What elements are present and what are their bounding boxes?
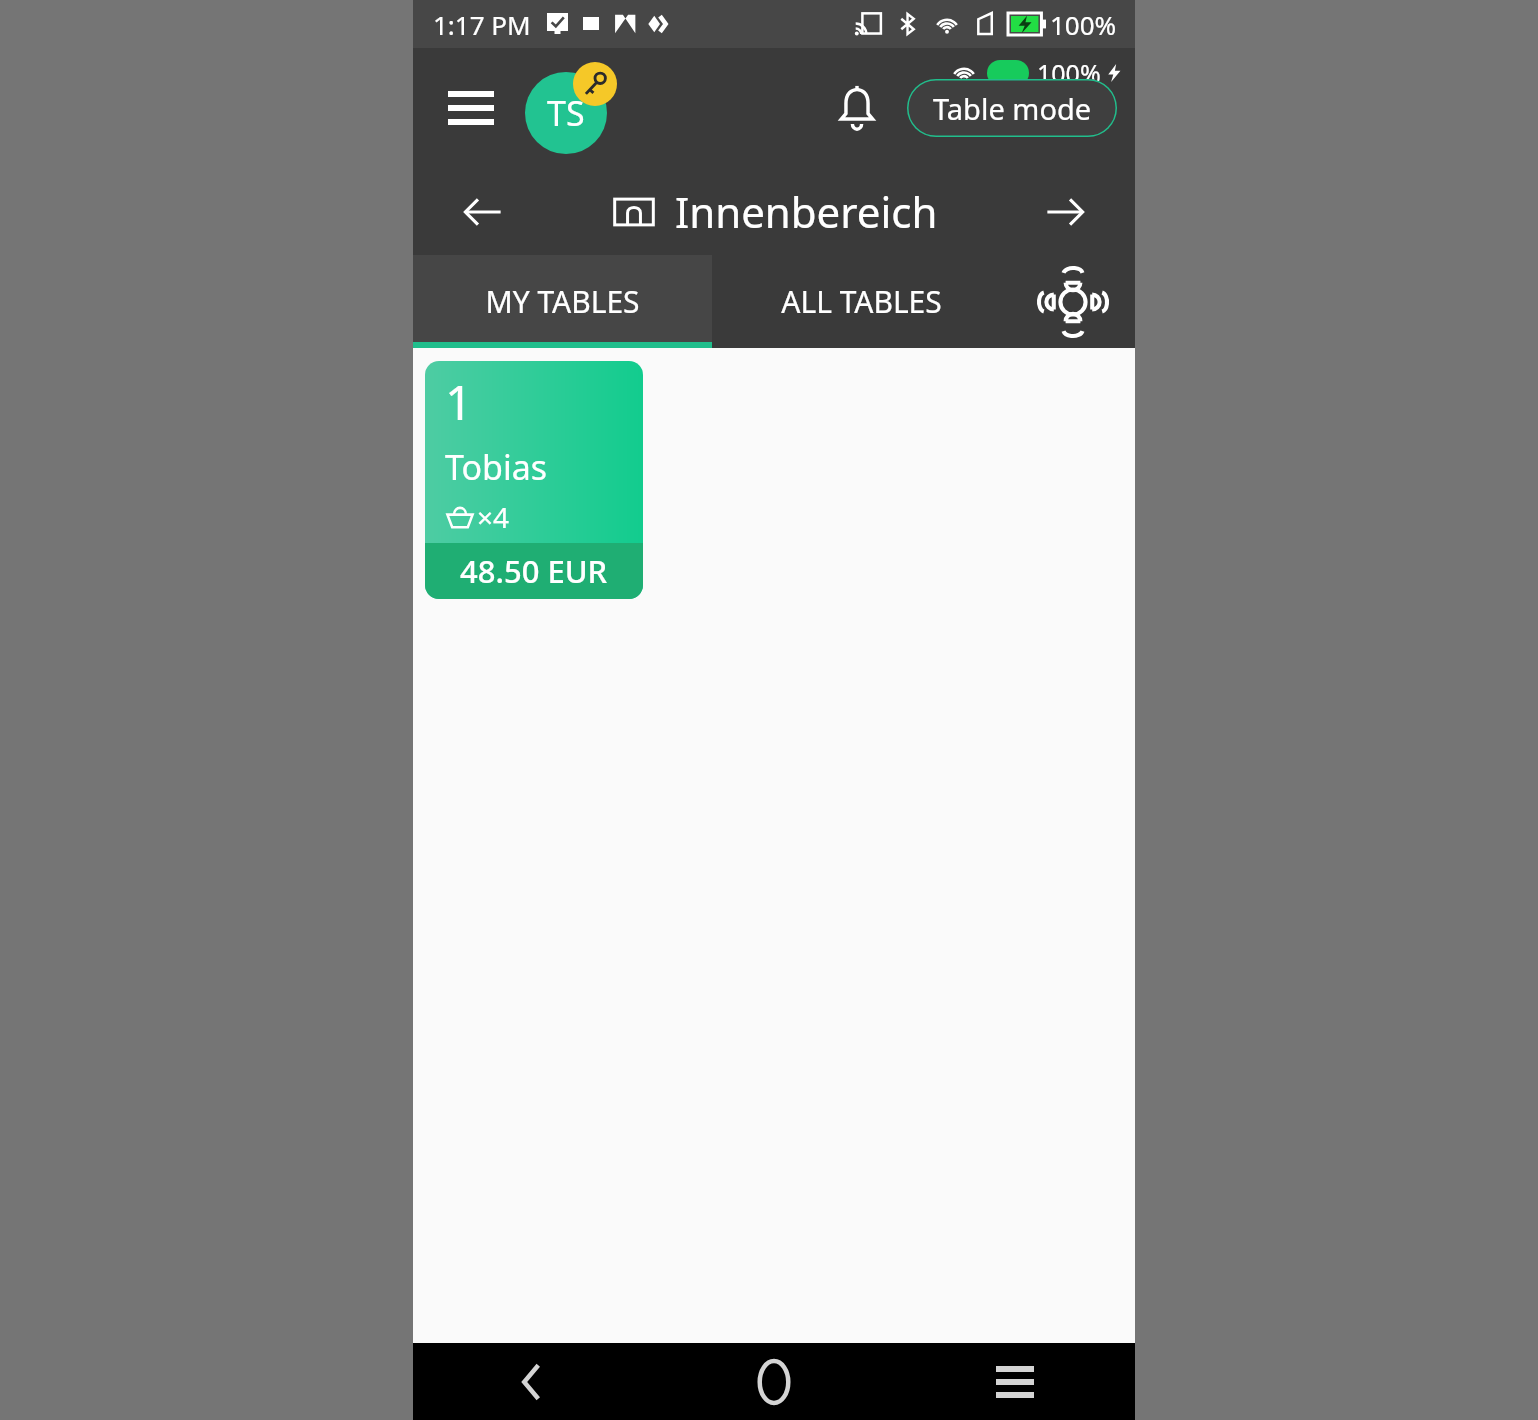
staticText: ALL TABLES	[781, 281, 942, 322]
button[interactable]: Previous area	[453, 182, 513, 242]
button[interactable]: Next area	[1035, 182, 1095, 242]
button[interactable]: Table layout view	[1010, 255, 1135, 348]
button[interactable]: Menu	[439, 76, 503, 140]
button[interactable]: Notifications	[821, 72, 893, 144]
staticText: 1	[445, 369, 473, 434]
button[interactable]: ALL TABLES	[712, 255, 1010, 348]
staticText: Table mode	[933, 89, 1092, 128]
staticText: MY TABLES	[485, 281, 640, 322]
staticText: 1:17 PM	[433, 7, 531, 42]
button[interactable]: Table mode	[907, 79, 1117, 137]
button[interactable]: Recent apps	[894, 1343, 1135, 1420]
staticText: Innenbereich	[675, 183, 938, 240]
staticText: ×4	[477, 498, 510, 536]
staticText: 100%	[1037, 56, 1101, 90]
staticText: TS	[547, 90, 585, 136]
button[interactable]: Account TS	[525, 62, 617, 154]
staticText: 100%	[1050, 7, 1117, 42]
staticText: Tobias	[445, 444, 548, 490]
button[interactable]: MY TABLES	[413, 255, 712, 348]
button[interactable]: 1	[425, 361, 643, 599]
staticText: 48.50 EUR	[460, 550, 608, 592]
button[interactable]: Back	[413, 1343, 653, 1420]
button[interactable]: Home	[653, 1343, 894, 1420]
